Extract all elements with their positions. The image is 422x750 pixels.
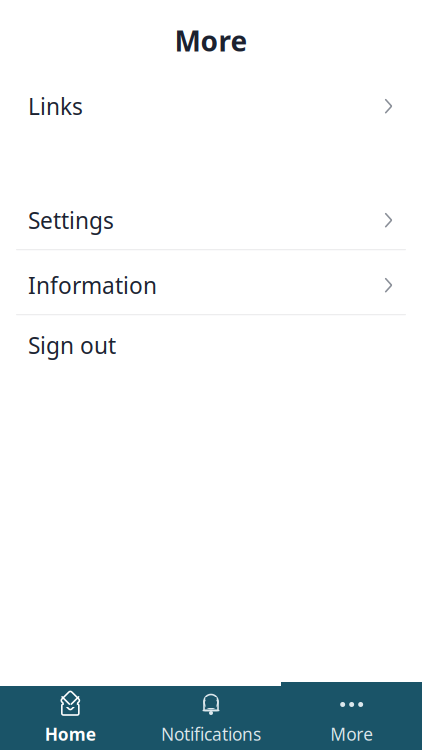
button[interactable]: Information bbox=[0, 267, 422, 303]
button[interactable]: Links bbox=[0, 88, 422, 124]
staticText: Information bbox=[28, 270, 157, 300]
staticText: Sign out bbox=[28, 330, 116, 360]
button[interactable]: Sign out bbox=[0, 327, 422, 363]
button[interactable]: Home bbox=[0, 682, 141, 750]
staticText: Home bbox=[45, 722, 96, 745]
staticText: Links bbox=[28, 91, 83, 121]
staticText: Settings bbox=[28, 205, 114, 235]
staticText: More bbox=[330, 722, 373, 745]
button[interactable]: Notifications bbox=[141, 682, 281, 750]
button[interactable]: Settings bbox=[0, 202, 422, 238]
staticText: More bbox=[174, 22, 247, 59]
staticText: Notifications bbox=[161, 722, 261, 745]
button[interactable]: More bbox=[281, 682, 422, 750]
